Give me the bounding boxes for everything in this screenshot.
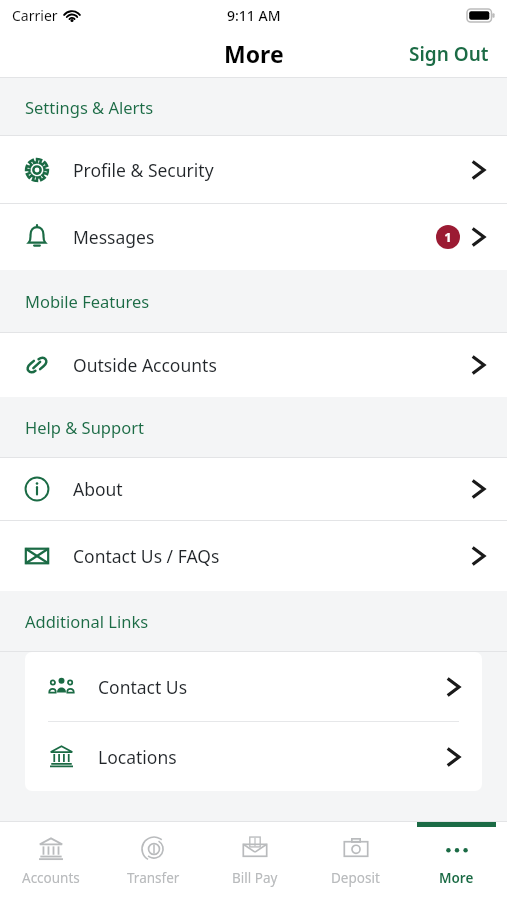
staticText: Mobile Features bbox=[25, 290, 150, 312]
button[interactable]: Accounts bbox=[0, 822, 102, 900]
staticText: Carrier bbox=[12, 6, 58, 25]
button[interactable]: Messages bbox=[0, 204, 507, 270]
button[interactable]: Transfer bbox=[102, 822, 204, 900]
staticText: Accounts bbox=[22, 869, 80, 887]
button[interactable]: More bbox=[406, 822, 507, 900]
staticText: More bbox=[439, 869, 474, 887]
button[interactable]: Outside Accounts bbox=[0, 333, 507, 397]
staticText: Additional Links bbox=[25, 610, 149, 632]
staticText: 9:11 AM bbox=[227, 6, 281, 25]
button[interactable]: Profile & Security bbox=[0, 136, 507, 203]
button[interactable]: Deposit bbox=[305, 822, 406, 900]
staticText: Outside Accounts bbox=[73, 353, 472, 377]
button[interactable]: Locations bbox=[25, 722, 482, 791]
staticText: Help & Support bbox=[25, 416, 144, 438]
staticText: Settings & Alerts bbox=[25, 96, 154, 118]
button[interactable]: Sign Out bbox=[391, 33, 507, 75]
staticText: Sign Out bbox=[409, 41, 489, 67]
staticText: Profile & Security bbox=[73, 158, 472, 182]
staticText: Contact Us / FAQs bbox=[73, 544, 472, 568]
staticText: Transfer bbox=[127, 869, 180, 887]
button[interactable]: About bbox=[0, 458, 507, 520]
staticText: Bill Pay bbox=[232, 869, 278, 887]
staticText: Messages bbox=[73, 225, 436, 249]
button[interactable]: Contact Us / FAQs bbox=[0, 521, 507, 591]
staticText: 1 bbox=[444, 228, 452, 246]
staticText: Contact Us bbox=[98, 675, 447, 699]
staticText: Deposit bbox=[331, 869, 380, 887]
staticText: More bbox=[224, 38, 284, 69]
staticText: Locations bbox=[98, 745, 447, 769]
staticText: About bbox=[73, 477, 472, 501]
button[interactable]: Bill Pay bbox=[204, 822, 305, 900]
button[interactable]: Contact Us bbox=[25, 652, 482, 721]
